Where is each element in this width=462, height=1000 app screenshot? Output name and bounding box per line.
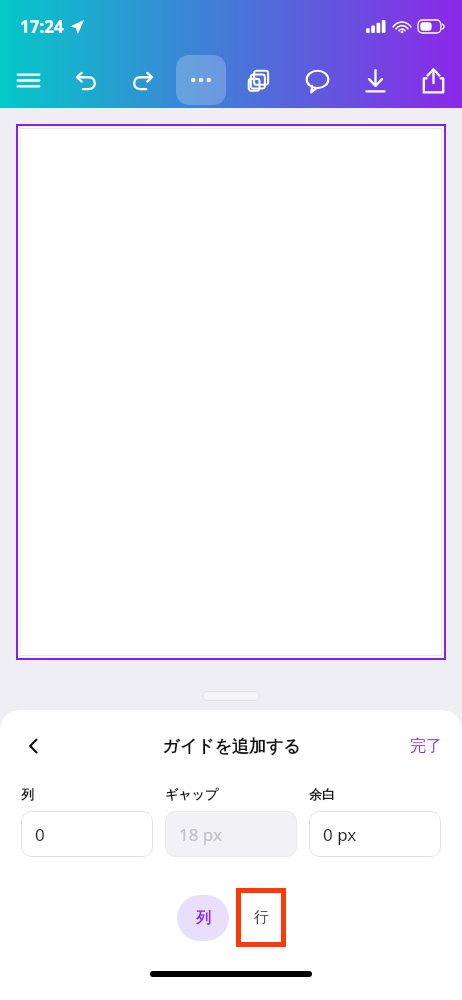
button[interactable]: Undo bbox=[57, 52, 114, 108]
button[interactable]: 18 px bbox=[165, 811, 297, 857]
button[interactable]: 0 bbox=[21, 811, 153, 857]
button[interactable]: Download bbox=[346, 52, 404, 108]
staticText: ギャップ bbox=[165, 786, 219, 802]
button[interactable]: Layers bbox=[230, 52, 288, 108]
button[interactable]: Redo bbox=[114, 52, 172, 108]
button[interactable]: 行 bbox=[241, 893, 281, 942]
staticText: 0 bbox=[35, 823, 45, 846]
button[interactable]: 完了 bbox=[402, 730, 450, 762]
button[interactable]: Back bbox=[14, 728, 54, 764]
button[interactable]: 列 bbox=[177, 895, 229, 941]
staticText: ガイドを追加する bbox=[162, 736, 301, 757]
staticText: 0 px bbox=[323, 823, 357, 846]
button[interactable]: 0 px bbox=[309, 811, 441, 857]
staticText: 完了 bbox=[410, 736, 442, 756]
staticText: 18 px bbox=[179, 823, 222, 846]
button[interactable]: Comments bbox=[288, 52, 346, 108]
button[interactable]: Share bbox=[404, 52, 462, 108]
staticText: 余白 bbox=[309, 786, 335, 802]
staticText: 17:24 bbox=[20, 15, 64, 38]
button[interactable]: Menu bbox=[0, 52, 57, 108]
button[interactable]: More options bbox=[176, 55, 226, 105]
staticText: 列 bbox=[21, 786, 34, 802]
staticText: 列 bbox=[196, 909, 211, 928]
staticText: 行 bbox=[254, 908, 269, 927]
